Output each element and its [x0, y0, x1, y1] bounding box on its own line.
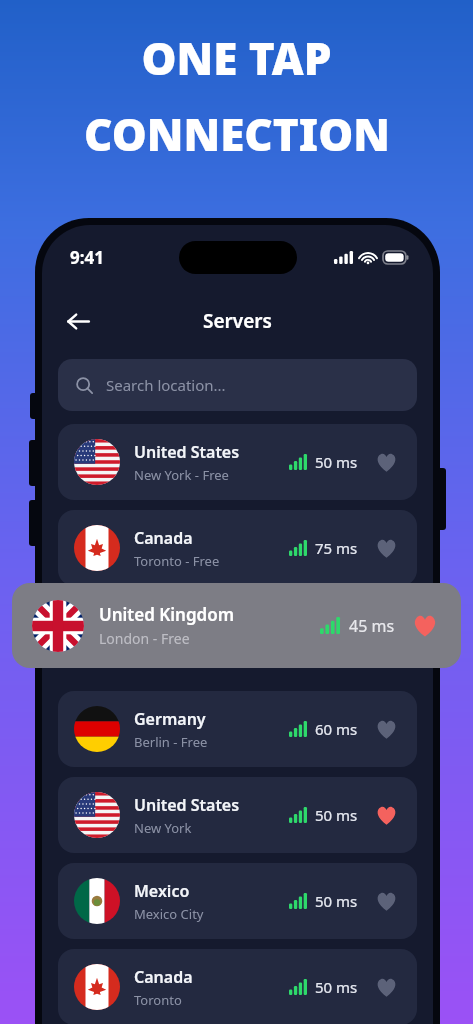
- staticText: Canada: [134, 966, 193, 988]
- staticText: Toronto: [134, 991, 182, 1009]
- staticText: 45 ms: [349, 615, 395, 637]
- staticText: United States: [134, 794, 240, 816]
- staticText: New York - Free: [134, 466, 229, 484]
- staticText: Servers: [203, 308, 272, 334]
- staticText: New York: [134, 819, 192, 837]
- staticText: 50 ms: [315, 891, 358, 911]
- button[interactable]: Mexico: [58, 863, 417, 939]
- button[interactable]: Favourite: [371, 972, 401, 1002]
- staticText: 60 ms: [315, 719, 358, 739]
- staticText: Search location...: [106, 375, 226, 395]
- staticText: CONNECTION: [84, 104, 390, 164]
- staticText: 9:41: [70, 246, 104, 269]
- staticText: ONE TAP: [141, 28, 332, 88]
- button[interactable]: Favourite: [371, 447, 401, 477]
- button[interactable]: Favourite: [371, 714, 401, 744]
- staticText: London - Free: [99, 629, 190, 648]
- staticText: Canada: [134, 527, 193, 549]
- button[interactable]: United Kingdom: [12, 583, 461, 668]
- staticText: Berlin - Free: [134, 733, 208, 751]
- staticText: 50 ms: [315, 452, 358, 472]
- staticText: 50 ms: [315, 977, 358, 997]
- staticText: 75 ms: [315, 538, 358, 558]
- staticText: Germany: [134, 708, 206, 730]
- staticText: United States: [134, 441, 240, 463]
- button[interactable]: Germany: [58, 691, 417, 767]
- staticText: Mexico City: [134, 905, 204, 923]
- button[interactable]: Favourite: [409, 610, 441, 642]
- staticText: Mexico: [134, 880, 190, 902]
- button[interactable]: Favourite: [371, 800, 401, 830]
- button[interactable]: Favourite: [371, 886, 401, 916]
- button[interactable]: Back: [56, 299, 100, 343]
- button[interactable]: Canada: [58, 510, 417, 586]
- button[interactable]: United States: [58, 424, 417, 500]
- button[interactable]: Canada: [58, 949, 417, 1024]
- button[interactable]: United States: [58, 777, 417, 853]
- staticText: 50 ms: [315, 805, 358, 825]
- staticText: Toronto - Free: [134, 552, 220, 570]
- button[interactable]: Search location...: [58, 359, 417, 411]
- button[interactable]: Favourite: [371, 533, 401, 563]
- staticText: United Kingdom: [99, 603, 235, 626]
